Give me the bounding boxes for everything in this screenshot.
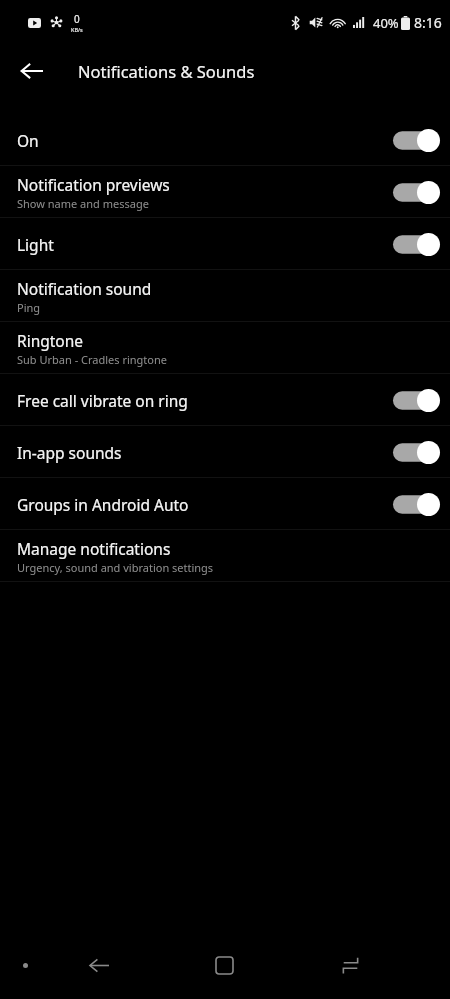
staticText: Notification sound bbox=[17, 278, 152, 299]
button[interactable]: Recent apps bbox=[328, 943, 372, 987]
button[interactable]: In-app sounds bbox=[0, 426, 450, 478]
staticText: 8:16 bbox=[414, 13, 442, 32]
button[interactable]: Home bbox=[202, 943, 246, 987]
button[interactable]: Free call vibrate on ring bbox=[0, 374, 450, 426]
button[interactable]: On bbox=[0, 114, 450, 166]
button[interactable]: Notification previews bbox=[0, 166, 450, 218]
button[interactable]: Hide navigation bar bbox=[12, 952, 38, 978]
button[interactable]: Notification previews toggle bbox=[389, 175, 443, 209]
button[interactable]: Groups in Android Auto bbox=[0, 478, 450, 530]
staticText: Notification previews bbox=[17, 174, 170, 195]
button[interactable]: In-app sounds toggle bbox=[389, 435, 443, 469]
button[interactable]: Light bbox=[0, 218, 450, 270]
button[interactable]: Groups in Android Auto toggle bbox=[389, 487, 443, 521]
button[interactable]: On toggle bbox=[389, 123, 443, 157]
button[interactable]: Back bbox=[77, 943, 121, 987]
button[interactable]: Ringtone bbox=[0, 322, 450, 374]
staticText: 40% bbox=[373, 14, 399, 32]
button[interactable]: Back bbox=[11, 51, 51, 91]
staticText: In-app sounds bbox=[17, 442, 122, 463]
button[interactable]: Notification sound bbox=[0, 270, 450, 322]
staticText: On bbox=[17, 130, 39, 151]
button[interactable]: Light toggle bbox=[389, 227, 443, 261]
staticText: Show name and message bbox=[17, 196, 149, 211]
staticText: Light bbox=[17, 234, 54, 255]
staticText: Notifications & Sounds bbox=[78, 60, 255, 82]
button[interactable]: Free call vibrate on ring toggle bbox=[389, 383, 443, 417]
staticText: Ping bbox=[17, 300, 41, 315]
button[interactable]: Manage notifications bbox=[0, 530, 450, 582]
staticText: KB/s bbox=[71, 26, 83, 33]
staticText: 0 bbox=[74, 12, 80, 26]
staticText: Groups in Android Auto bbox=[17, 494, 189, 515]
staticText: Free call vibrate on ring bbox=[17, 390, 188, 411]
staticText: Urgency, sound and vibration settings bbox=[17, 560, 214, 575]
staticText: Manage notifications bbox=[17, 538, 171, 559]
staticText: Sub Urban - Cradles ringtone bbox=[17, 352, 167, 367]
staticText: Ringtone bbox=[17, 330, 84, 351]
